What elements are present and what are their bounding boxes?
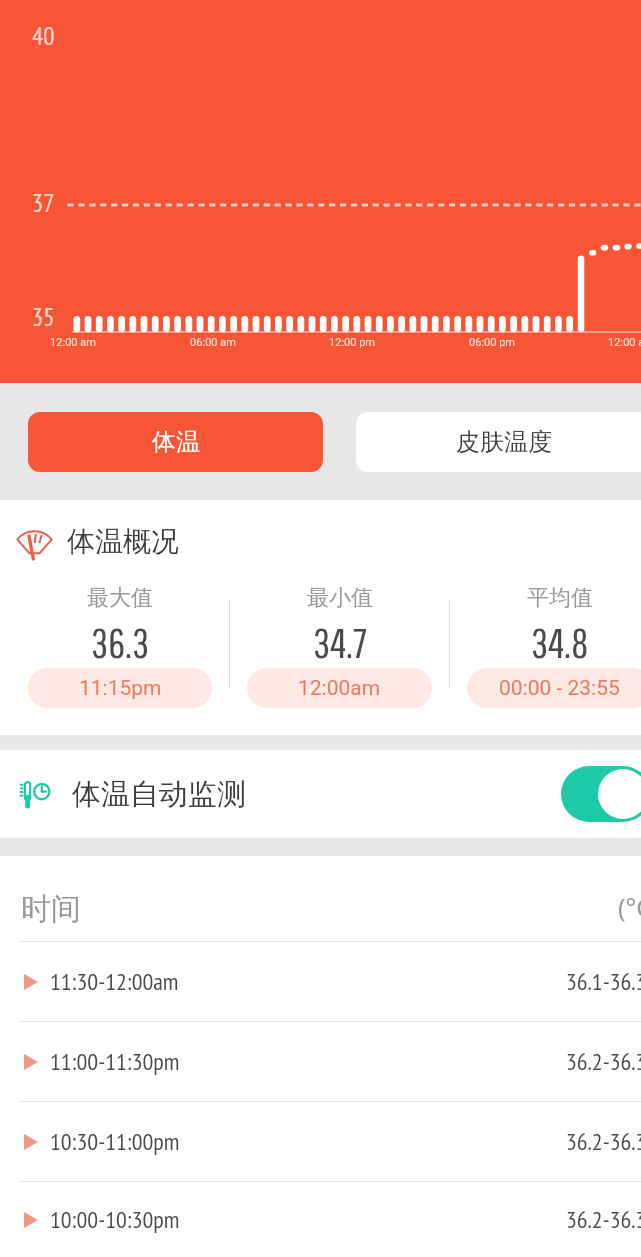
button[interactable]: 11:00-11:30pm — [0, 1022, 641, 1101]
staticText: (°C) — [618, 890, 641, 924]
staticText: 36.2-36.3 — [566, 1204, 641, 1235]
staticText: 35 — [32, 301, 55, 333]
staticText: 体温自动监测 — [72, 776, 246, 813]
staticText: 12:00 am — [13, 336, 133, 349]
staticText: 34.7 — [313, 618, 367, 666]
staticText: 时间 — [21, 890, 81, 928]
button[interactable]: 皮肤温度 — [356, 412, 641, 472]
staticText: 36.3 — [91, 618, 150, 666]
staticText: 12:00 am — [571, 336, 641, 349]
staticText: 11:30-12:00am — [50, 966, 179, 997]
button[interactable]: 10:30-11:00pm — [0, 1102, 641, 1181]
button[interactable]: 10:00-10:30pm — [0, 1182, 641, 1257]
staticText: 37 — [32, 187, 55, 219]
staticText: 34.8 — [531, 618, 589, 666]
staticText: 12:00am — [298, 676, 381, 701]
staticText: 12:00 pm — [292, 336, 412, 349]
staticText: 10:30-11:00pm — [50, 1126, 180, 1157]
staticText: 36.2-36.3 — [566, 1126, 641, 1157]
staticText: 最小值 — [307, 584, 373, 612]
staticText: 体温 — [152, 427, 200, 457]
button[interactable]: Toggle automatic temperature monitoring — [561, 766, 641, 822]
staticText: 11:00-11:30pm — [50, 1046, 180, 1077]
staticText: 平均值 — [527, 584, 593, 612]
staticText: 体温概况 — [67, 524, 179, 559]
staticText: 36.2-36.3 — [566, 1046, 641, 1077]
button[interactable]: 11:30-12:00am — [0, 942, 641, 1021]
staticText: 06:00 am — [153, 336, 273, 349]
staticText: 00:00 - 23:55 — [499, 676, 620, 701]
staticText: 11:15pm — [79, 676, 162, 701]
button[interactable]: 体温自动监测 — [0, 750, 641, 838]
staticText: 最大值 — [87, 584, 153, 612]
staticText: 06:00 pm — [432, 336, 552, 349]
button[interactable]: 体温 — [28, 412, 323, 472]
staticText: 40 — [32, 20, 55, 52]
staticText: 10:00-10:30pm — [50, 1204, 180, 1235]
staticText: 皮肤温度 — [456, 427, 552, 457]
staticText: 36.1-36.3 — [566, 966, 641, 997]
